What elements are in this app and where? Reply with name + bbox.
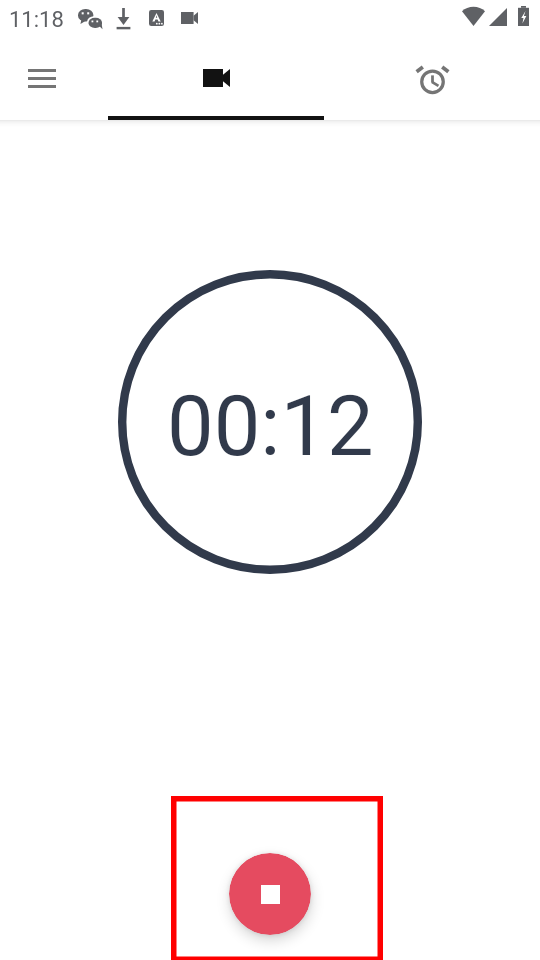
button[interactable]: Alarm xyxy=(404,52,460,108)
staticText: 00:12 xyxy=(167,378,374,475)
button[interactable]: Stop recording xyxy=(229,853,311,935)
button[interactable]: Menu xyxy=(14,52,70,108)
button[interactable]: Video xyxy=(108,40,324,120)
staticText: 11:18 xyxy=(9,7,64,33)
